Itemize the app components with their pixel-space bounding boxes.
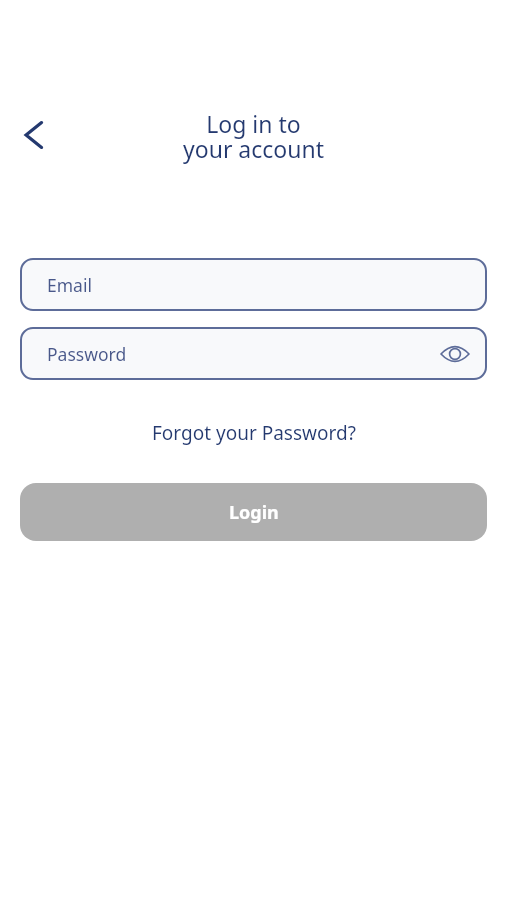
staticText: Email [47, 273, 92, 297]
button[interactable] [16, 117, 52, 153]
button[interactable]: Password [20, 327, 487, 380]
staticText: Password [47, 342, 127, 366]
button[interactable]: Login [20, 483, 487, 541]
button[interactable]: Forgot your Password? [148, 416, 360, 450]
staticText: Log in to your account [0, 108, 507, 164]
staticText: Login [229, 500, 279, 525]
button[interactable]: Email [20, 258, 487, 311]
